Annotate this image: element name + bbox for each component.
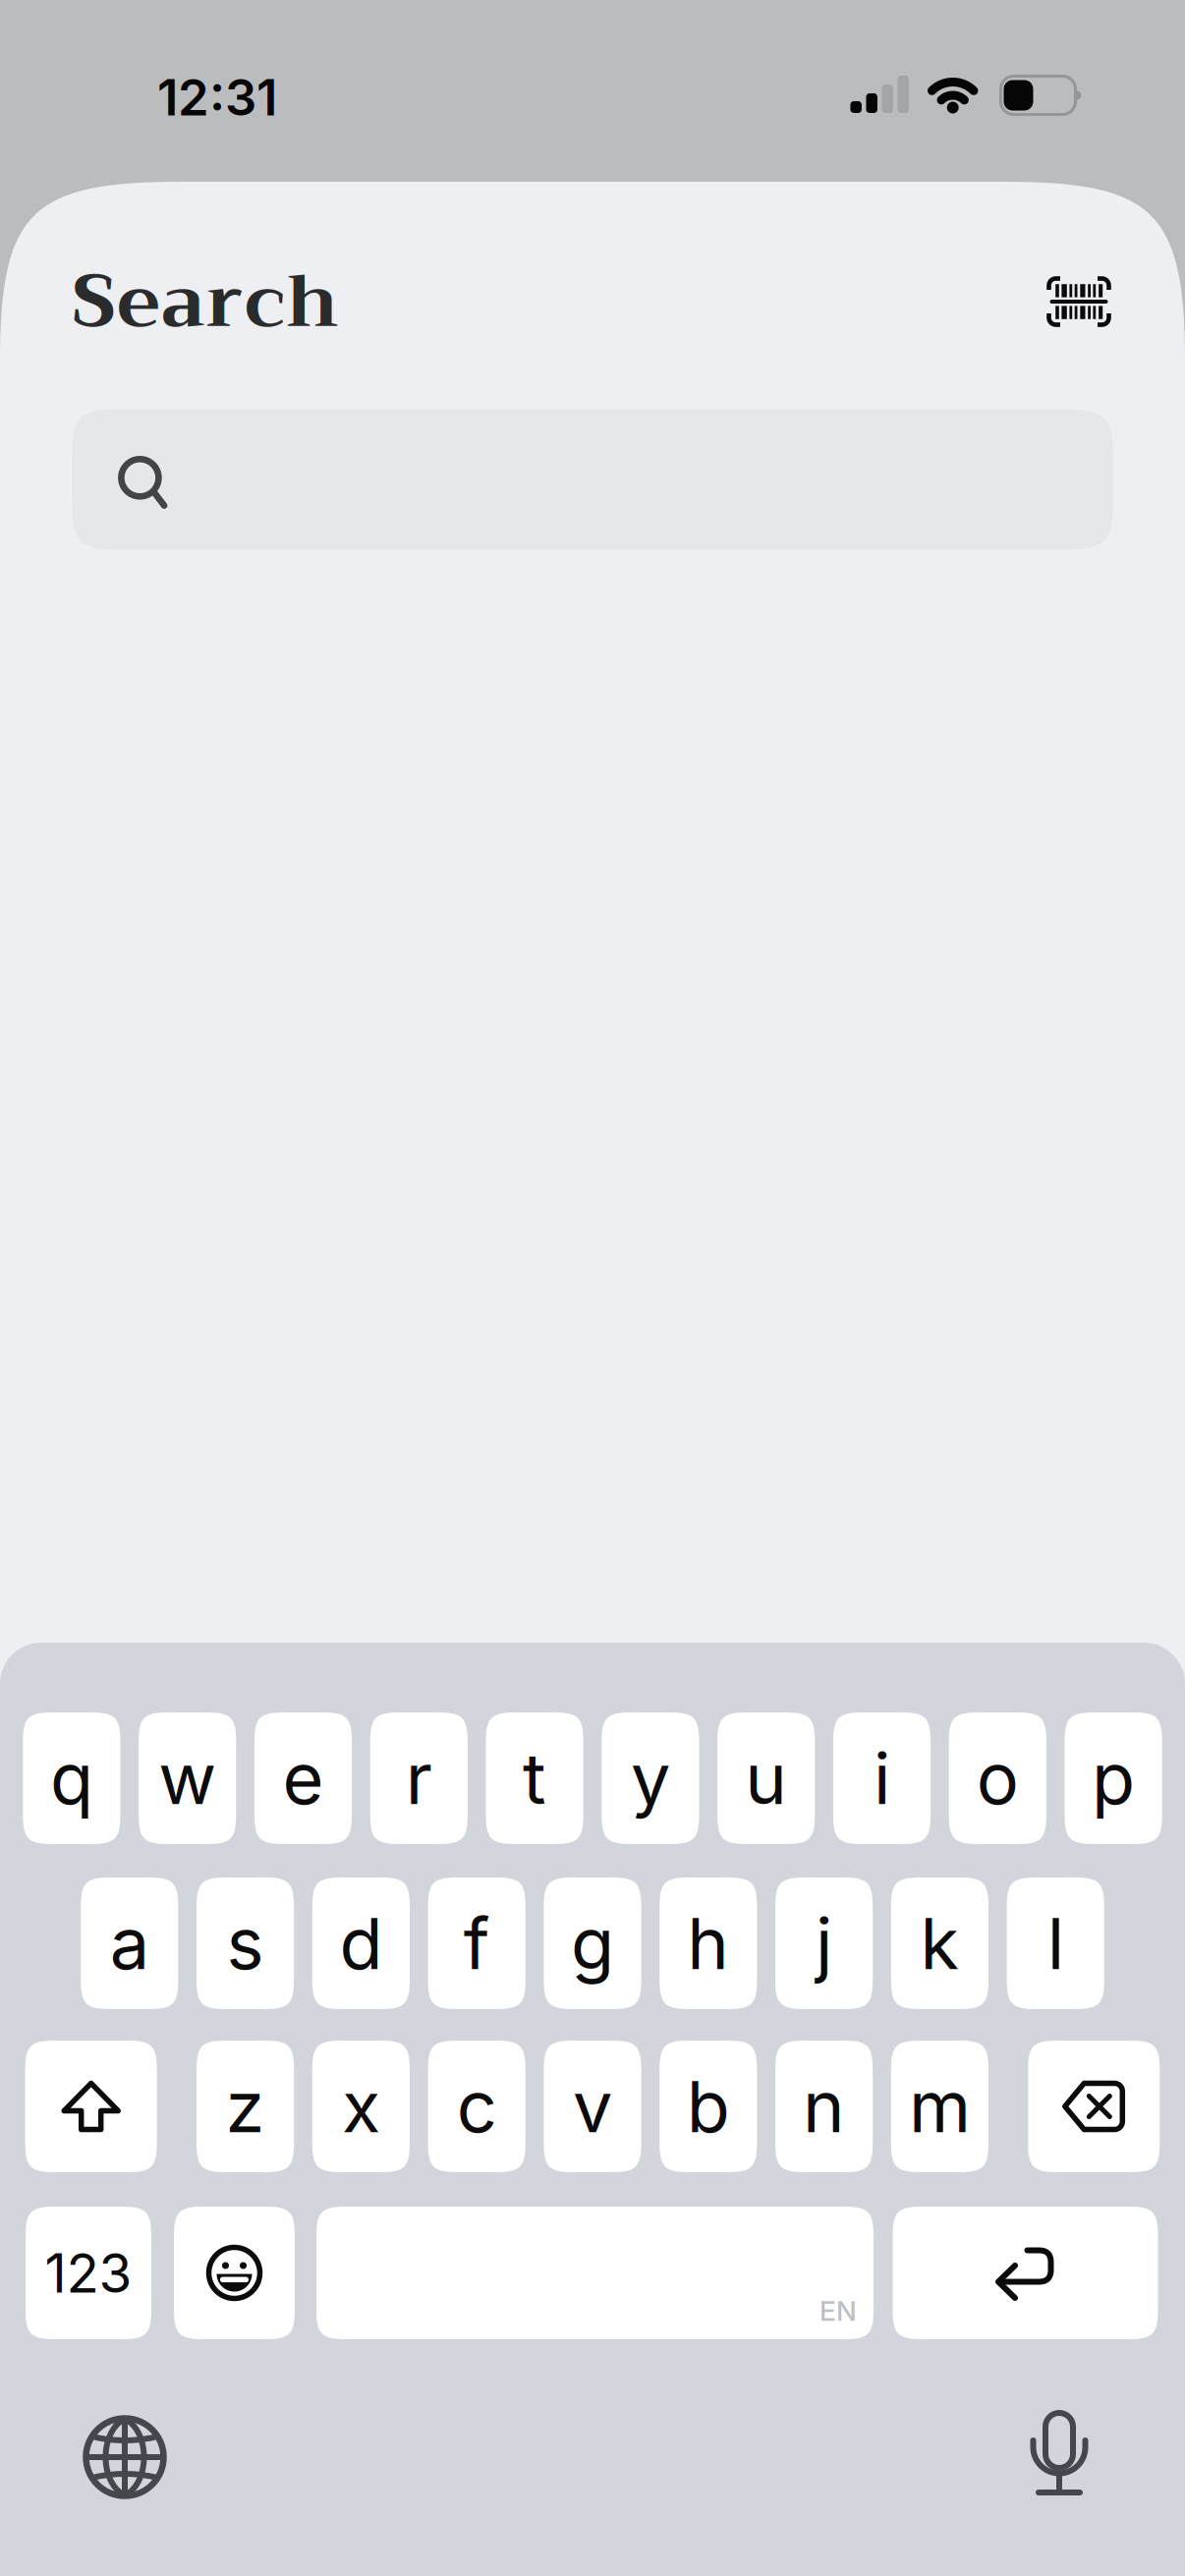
staticText: k (920, 1900, 959, 1986)
button[interactable]: o (949, 1712, 1046, 1844)
button[interactable]: d (312, 1877, 410, 2009)
staticText: r (406, 1735, 432, 1821)
staticText: o (976, 1735, 1019, 1821)
button[interactable]: e (254, 1712, 352, 1844)
staticText: y (631, 1735, 670, 1821)
button[interactable]: z (197, 2041, 294, 2172)
staticText: h (286, 238, 339, 365)
button[interactable]: Scan barcode (1046, 276, 1111, 327)
button[interactable]: r (370, 1712, 468, 1844)
staticText: m (909, 2064, 971, 2149)
button[interactable]: i (833, 1712, 931, 1844)
staticText: e (117, 238, 160, 365)
button[interactable]: l (1007, 1877, 1104, 2009)
button[interactable]: Shift (25, 2041, 157, 2172)
button[interactable]: q (23, 1712, 120, 1844)
button[interactable]: v (544, 2041, 641, 2172)
staticText: u (745, 1735, 787, 1821)
button[interactable]: f (428, 1877, 525, 2009)
button[interactable]: h (660, 1877, 757, 2009)
button[interactable]: y (602, 1712, 699, 1844)
staticText: v (573, 2064, 612, 2149)
staticText: h (687, 1900, 729, 1986)
button[interactable]: j (775, 1877, 873, 2009)
staticText: c (457, 2064, 497, 2149)
button[interactable]: Search (72, 409, 1113, 550)
staticText: t (523, 1735, 546, 1821)
staticText: z (226, 2064, 265, 2149)
staticText: g (571, 1900, 614, 1986)
button[interactable]: c (428, 2041, 525, 2172)
staticText: f (463, 1900, 490, 1986)
button[interactable]: t (486, 1712, 583, 1844)
button[interactable]: space (316, 2207, 874, 2339)
button[interactable]: x (312, 2041, 410, 2172)
staticText: b (687, 2064, 730, 2149)
button[interactable]: w (139, 1712, 236, 1844)
button[interactable]: s (197, 1877, 294, 2009)
button[interactable]: Delete (1028, 2041, 1160, 2172)
button[interactable]: p (1065, 1712, 1162, 1844)
staticText: i (874, 1735, 890, 1821)
staticText: d (339, 1900, 383, 1986)
button[interactable]: Return (893, 2207, 1158, 2339)
staticText: a (162, 238, 205, 365)
staticText: 12:31 (157, 67, 277, 127)
staticText: q (50, 1735, 93, 1821)
button[interactable]: g (544, 1877, 641, 2009)
button[interactable]: Emoji (174, 2207, 295, 2339)
button[interactable]: Numbers (26, 2207, 151, 2339)
staticText: r (206, 238, 243, 365)
button[interactable]: Dictation (1031, 2411, 1088, 2497)
staticText: S (72, 238, 116, 365)
button[interactable]: a (81, 1877, 178, 2009)
button[interactable]: n (775, 2041, 873, 2172)
staticText: 123 (45, 2240, 132, 2305)
staticText: e (282, 1735, 324, 1821)
staticText: l (1047, 1900, 1064, 1986)
staticText: EN (819, 2294, 857, 2327)
button[interactable]: b (660, 2041, 757, 2172)
staticText: p (1092, 1735, 1135, 1821)
staticText: a (110, 1900, 149, 1986)
button[interactable]: Next keyboard (84, 2416, 166, 2498)
button[interactable]: k (891, 1877, 988, 2009)
staticText: s (227, 1900, 264, 1986)
staticText: c (244, 238, 285, 365)
staticText: w (158, 1735, 216, 1821)
button[interactable]: m (891, 2041, 988, 2172)
staticText: j (816, 1900, 832, 1986)
button[interactable]: u (717, 1712, 815, 1844)
staticText: n (803, 2064, 845, 2149)
staticText: x (342, 2064, 380, 2149)
